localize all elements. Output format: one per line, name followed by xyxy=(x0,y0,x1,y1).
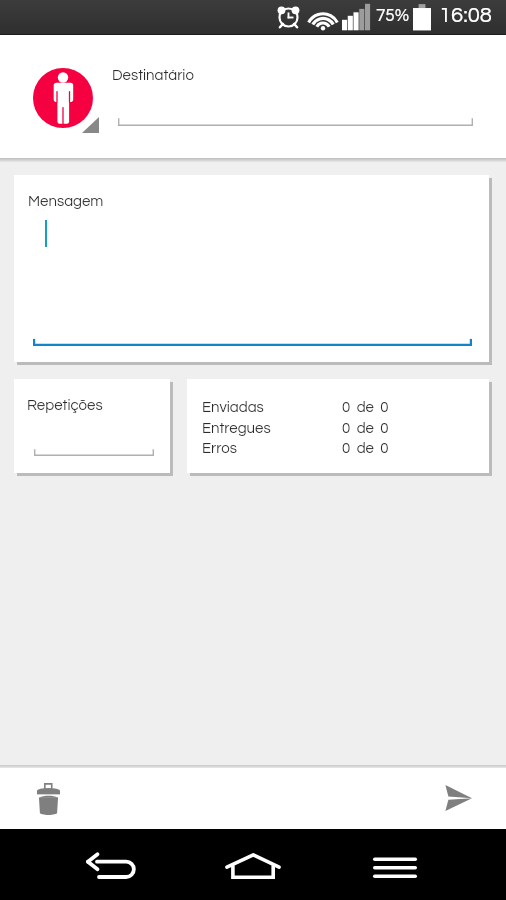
staticText: 0 de 0 xyxy=(342,400,389,415)
staticText: Entregues xyxy=(202,421,271,436)
staticText: Repetições xyxy=(27,398,103,413)
button[interactable]: Recipient input xyxy=(118,115,473,126)
staticText: Erros xyxy=(202,441,237,456)
button[interactable]: Back xyxy=(80,844,143,890)
button[interactable]: Mensagem xyxy=(14,175,489,362)
button[interactable]: Home xyxy=(219,843,287,889)
button[interactable]: Send message xyxy=(435,775,481,821)
button[interactable]: Delete xyxy=(25,776,71,822)
staticText: Destinatário xyxy=(112,68,194,83)
staticText: 0 de 0 xyxy=(342,421,389,436)
staticText: Mensagem xyxy=(28,194,104,209)
button[interactable]: Enviadas xyxy=(187,379,489,473)
button[interactable]: Repetições xyxy=(14,379,170,473)
staticText: 16:08 xyxy=(439,4,492,27)
staticText: 0 de 0 xyxy=(342,441,389,456)
staticText: 75% xyxy=(376,7,410,25)
button[interactable]: Recent apps xyxy=(365,844,425,890)
staticText: Enviadas xyxy=(202,400,264,415)
button[interactable]: Contact photo xyxy=(33,68,93,128)
